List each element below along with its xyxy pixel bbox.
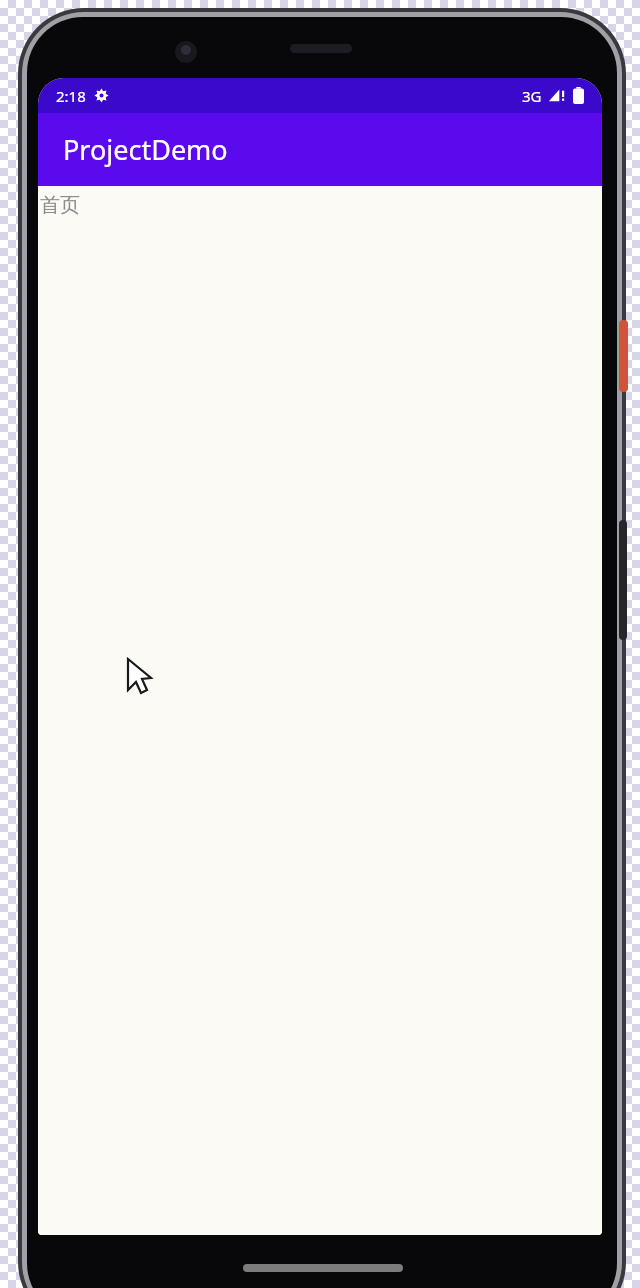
staticText: 2:18	[56, 86, 86, 106]
staticText: ProjectDemo	[63, 131, 228, 168]
staticText: 3G	[522, 86, 542, 106]
other: Settings	[94, 88, 109, 103]
button[interactable]: 首页	[38, 186, 80, 218]
